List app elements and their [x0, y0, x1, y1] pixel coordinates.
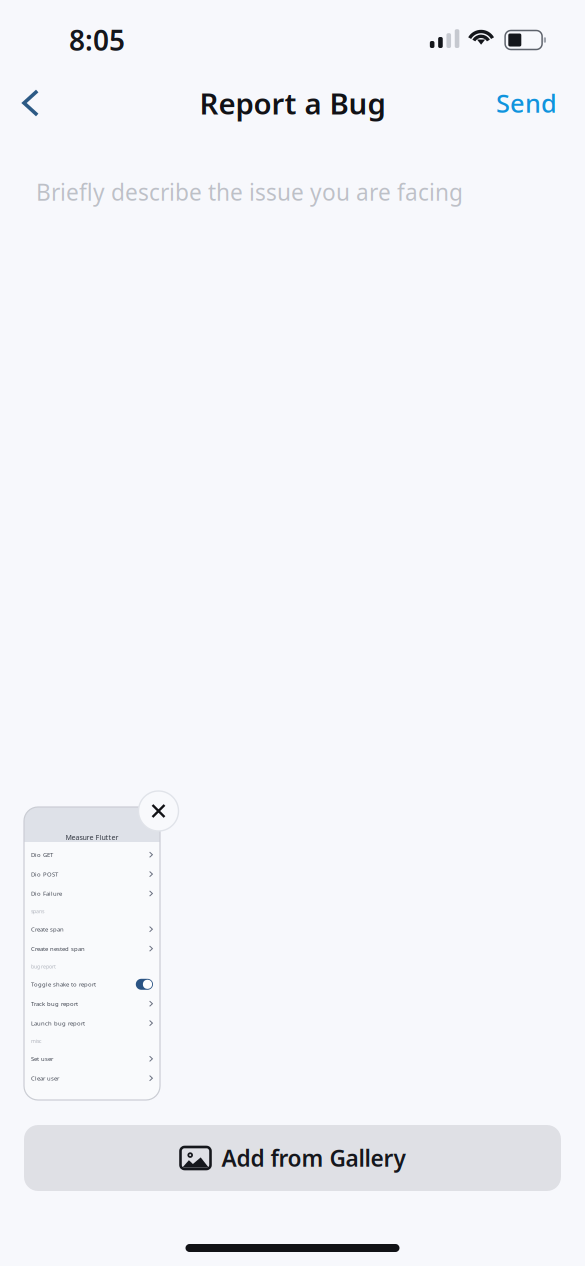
staticText: Toggle shake to report	[31, 980, 96, 988]
button[interactable]: Add from Gallery	[24, 1125, 561, 1191]
staticText: Dio Failure	[31, 889, 62, 897]
staticText: Measure Flutter	[65, 832, 118, 842]
staticText: Send	[496, 86, 557, 120]
staticText: Add from Gallery	[221, 1143, 405, 1173]
staticText: Create span	[31, 925, 64, 933]
button[interactable]: Remove attachment	[138, 791, 178, 831]
staticText: 8:05	[69, 21, 125, 59]
staticText: misc	[31, 1037, 41, 1044]
staticText: spans	[31, 908, 44, 915]
staticText: Launch bug report	[31, 1019, 85, 1027]
button[interactable]: Back	[6, 77, 55, 129]
staticText: bug report	[31, 963, 56, 970]
staticText: Report a Bug	[199, 83, 385, 122]
staticText: Track bug report	[31, 1000, 78, 1008]
staticText: Dio GET	[31, 851, 53, 859]
button[interactable]: Send	[474, 77, 579, 129]
staticText: Dio POST	[31, 870, 58, 878]
staticText: Set user	[31, 1055, 53, 1063]
staticText: Clear user	[31, 1074, 59, 1082]
staticText: Create nested span	[31, 945, 85, 953]
staticText: Briefly describe the issue you are facin…	[36, 177, 463, 207]
